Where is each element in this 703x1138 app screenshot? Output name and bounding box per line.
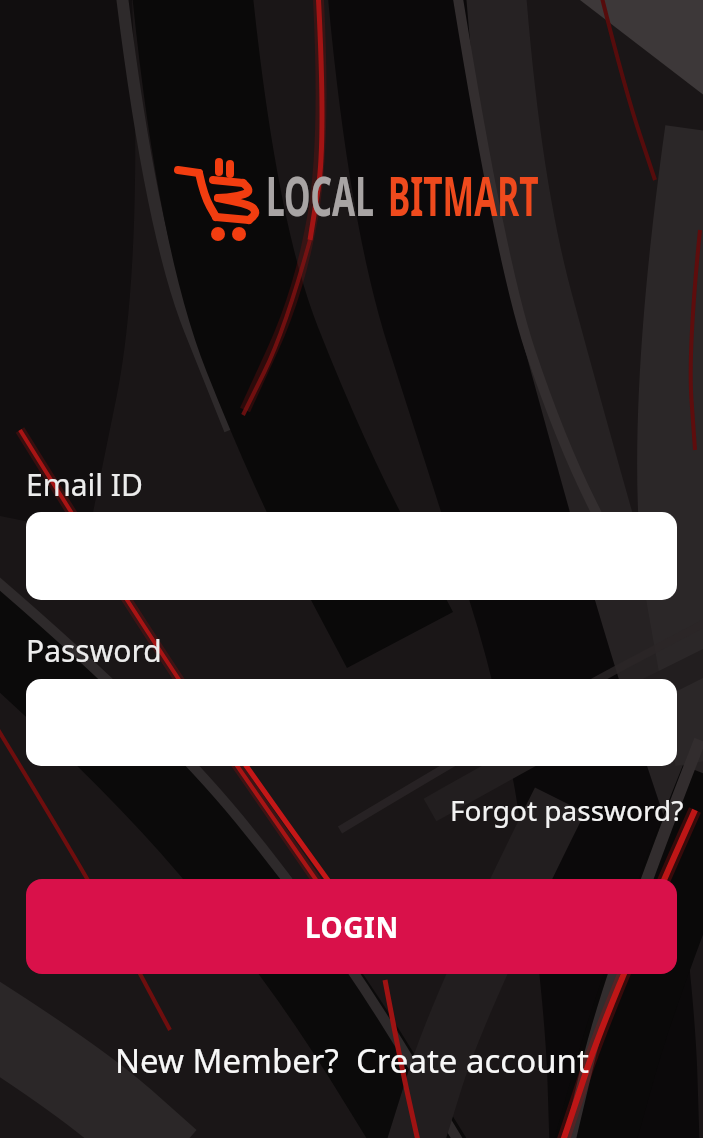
- staticText: Password: [26, 630, 162, 671]
- staticText: LOCAL: [266, 158, 374, 232]
- button[interactable]: Forgot password?: [450, 791, 684, 829]
- staticText: LOGIN: [305, 908, 399, 946]
- button[interactable]: LOGIN: [26, 879, 677, 974]
- button[interactable]: [26, 512, 677, 600]
- button[interactable]: [26, 679, 677, 766]
- button[interactable]: New Member? Create account: [115, 1038, 589, 1083]
- staticText: BITMART: [388, 158, 539, 232]
- staticText: Email ID: [26, 464, 143, 505]
